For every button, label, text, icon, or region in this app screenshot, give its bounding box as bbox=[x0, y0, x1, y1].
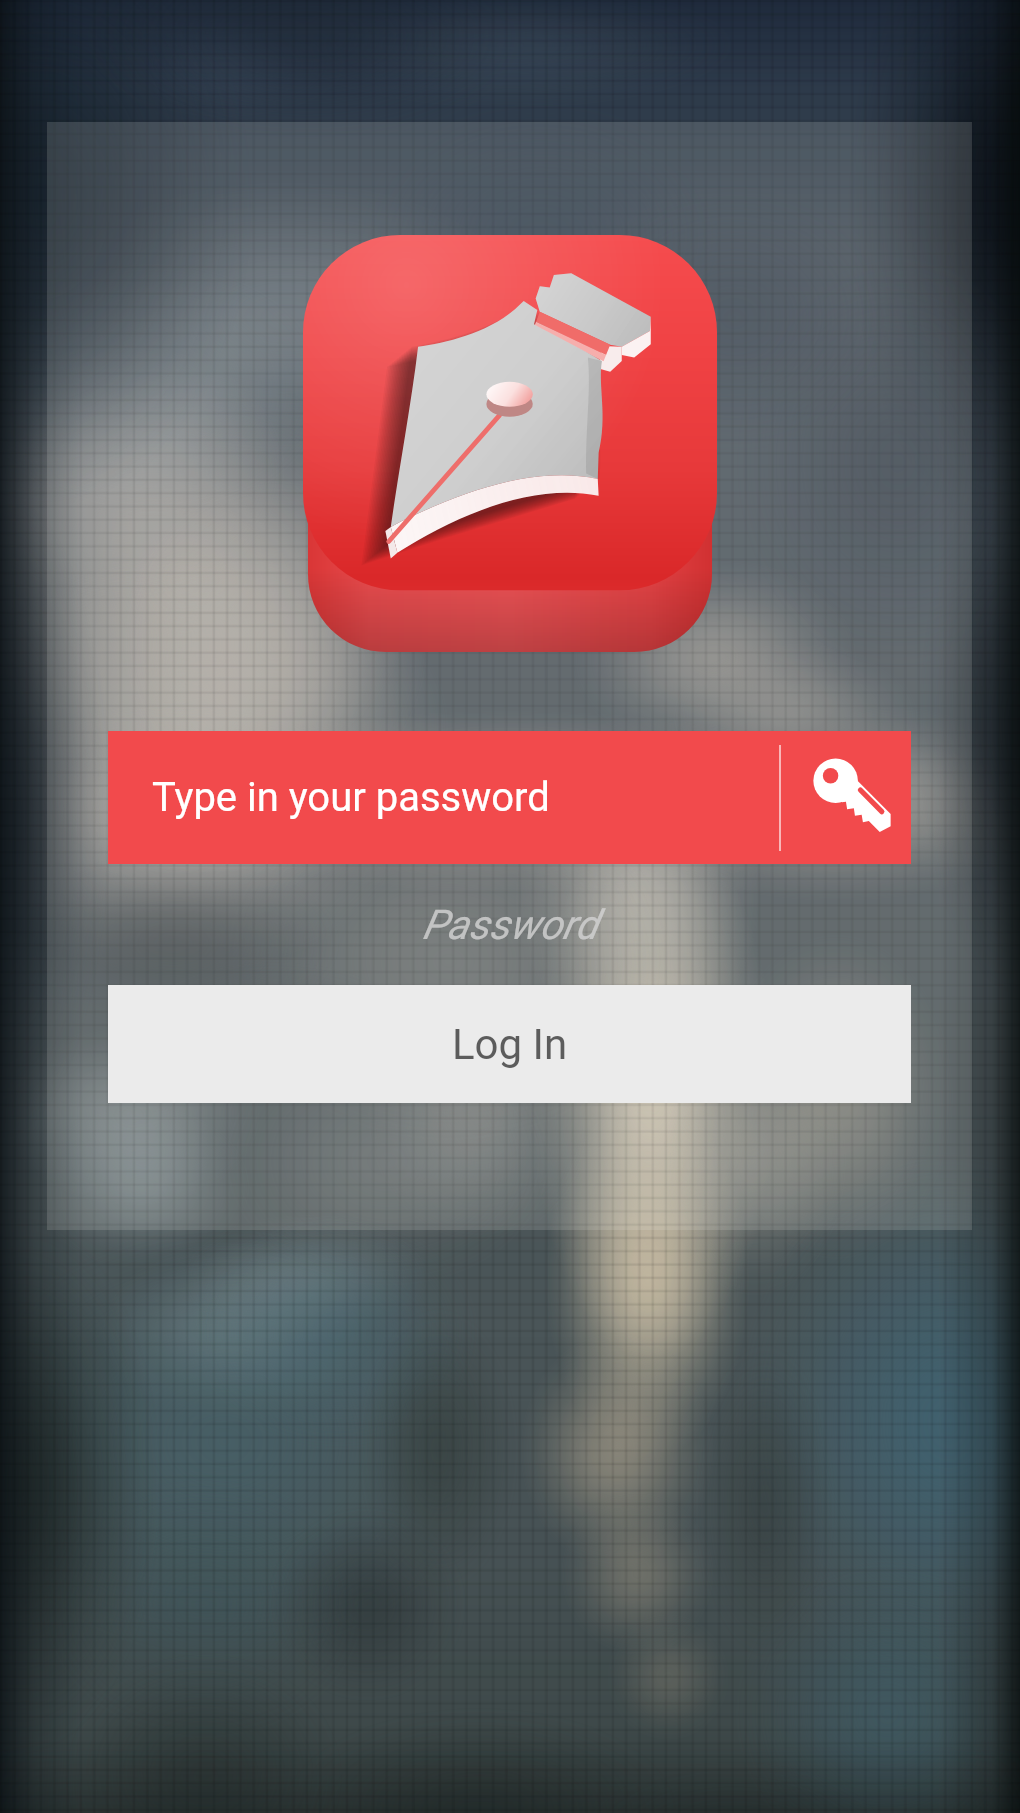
button[interactable]: Password bbox=[108, 864, 911, 985]
staticText: Type in your password bbox=[152, 774, 779, 821]
button[interactable]: Show password bbox=[781, 731, 911, 864]
button[interactable]: Log In bbox=[108, 985, 911, 1103]
staticText: Log In bbox=[452, 1020, 568, 1069]
button[interactable]: Type in your password bbox=[108, 731, 911, 864]
staticText: Password bbox=[422, 901, 598, 949]
